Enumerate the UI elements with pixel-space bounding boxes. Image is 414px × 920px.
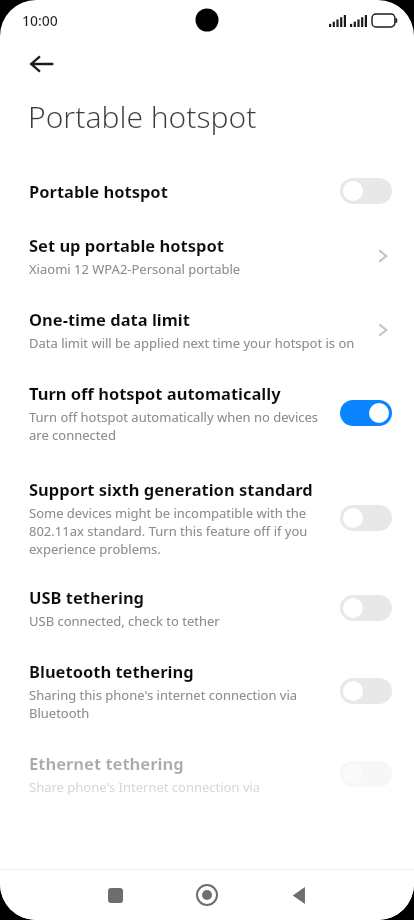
staticText: Some devices might be incompatible with … xyxy=(29,504,326,558)
button[interactable]: Recents xyxy=(92,872,138,918)
staticText: Xiaomi 12 WPA2-Personal portable xyxy=(29,260,241,278)
button[interactable]: One-time data limit xyxy=(0,304,414,356)
button[interactable]: Back xyxy=(276,872,322,918)
button[interactable]: Turn off hotspot automatically xyxy=(0,378,414,448)
button[interactable]: Home xyxy=(184,872,230,918)
staticText: Support sixth generation standard xyxy=(29,478,313,500)
staticText: Data limit will be applied next time you… xyxy=(29,334,355,352)
button[interactable]: USB tethering xyxy=(0,582,414,634)
button[interactable]: Portable hotspot xyxy=(0,170,414,216)
button[interactable]: Back xyxy=(18,40,66,88)
staticText: Set up portable hotspot xyxy=(29,234,224,256)
staticText: USB tethering xyxy=(29,586,145,608)
button[interactable]: Toggle off xyxy=(340,678,392,704)
button[interactable]: Toggle off xyxy=(340,178,392,204)
button[interactable]: Ethernet tethering xyxy=(0,748,414,800)
button[interactable]: Toggle on xyxy=(340,400,392,426)
staticText: One-time data limit xyxy=(29,308,190,330)
staticText: Turn off hotspot automatically xyxy=(29,382,281,404)
button[interactable]: Toggle off xyxy=(340,595,392,621)
staticText: Ethernet tethering xyxy=(29,752,184,774)
button[interactable]: Set up portable hotspot xyxy=(0,230,414,282)
button[interactable]: Support sixth generation standard xyxy=(0,474,414,562)
staticText: Sharing this phone's internet connection… xyxy=(29,686,326,722)
staticText: 10:00 xyxy=(22,11,58,30)
staticText: Share phone's Internet connection via xyxy=(29,778,261,796)
button[interactable]: Bluetooth tethering xyxy=(0,656,414,726)
staticText: Turn off hotspot automatically when no d… xyxy=(29,408,326,444)
staticText: Portable hotspot xyxy=(29,180,168,202)
staticText: Bluetooth tethering xyxy=(29,660,194,682)
staticText: USB connected, check to tether xyxy=(29,612,220,630)
button[interactable]: Toggle off xyxy=(340,505,392,531)
staticText: Portable hotspot xyxy=(28,96,257,137)
